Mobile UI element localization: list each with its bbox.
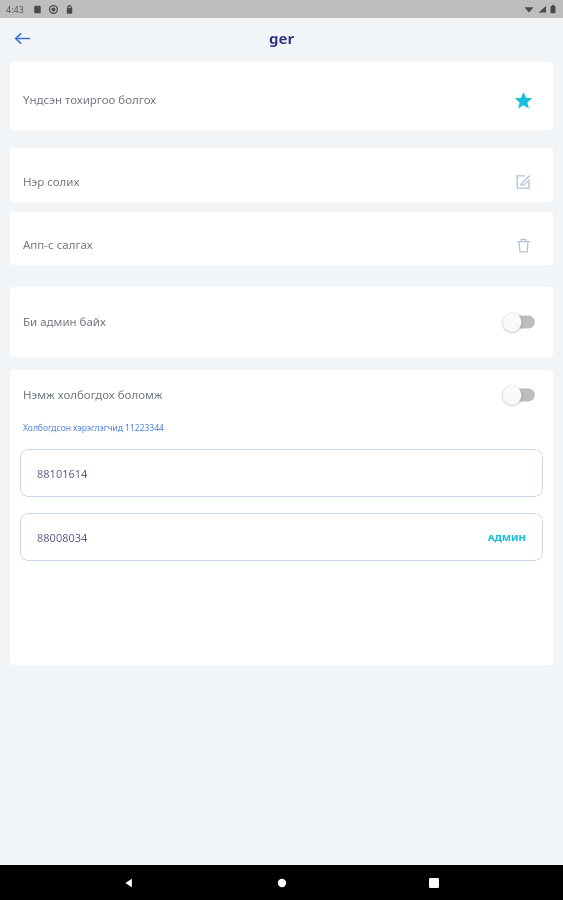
staticText: 88101614 — [37, 466, 526, 481]
button[interactable]: 88008034 — [20, 513, 543, 561]
button[interactable]: Нэмж холбогдох боломж — [10, 370, 553, 420]
staticText: Нэр солих — [23, 174, 511, 190]
staticText: 4:43 — [6, 3, 24, 15]
button[interactable]: Back — [5, 21, 39, 55]
staticText: 88008034 — [37, 530, 488, 545]
staticText: Холбогдсон хэрэглэгчид 11223344 — [23, 422, 164, 434]
button[interactable]: Remove from app — [511, 233, 535, 257]
button[interactable]: Home — [259, 865, 305, 900]
staticText: Апп-с салгах — [23, 237, 511, 253]
button[interactable]: Recent apps — [411, 865, 457, 900]
button[interactable]: Апп-с салгах — [10, 212, 553, 265]
button[interactable]: Toggle — [501, 384, 537, 406]
button[interactable]: Back — [106, 865, 152, 900]
button[interactable]: 88101614 — [20, 449, 543, 497]
staticText: ger — [269, 28, 295, 48]
button[interactable]: Rename — [511, 170, 535, 194]
staticText: Би админ байх — [23, 314, 501, 330]
button[interactable]: Үндсэн тохиргоо болгох — [10, 62, 553, 130]
button[interactable]: Би админ байх — [10, 287, 553, 357]
staticText: Үндсэн тохиргоо болгох — [23, 92, 511, 108]
button[interactable]: Set as default — [511, 88, 535, 112]
button[interactable]: Нэр солих — [10, 148, 553, 202]
staticText: Нэмж холбогдох боломж — [23, 387, 501, 403]
staticText: АДМИН — [488, 531, 526, 544]
button[interactable]: Toggle — [501, 311, 537, 333]
